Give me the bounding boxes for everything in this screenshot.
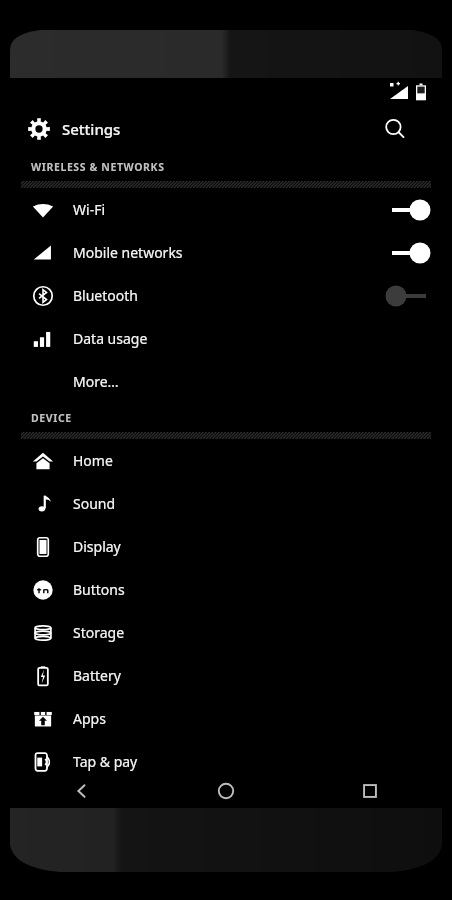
staticText: Mobile networks [73, 243, 183, 262]
button[interactable]: Apps [10, 697, 442, 740]
staticText: Data usage [73, 329, 148, 348]
button[interactable]: Sound [10, 482, 442, 525]
button[interactable]: More… [10, 360, 442, 403]
button[interactable]: Mobile networks [10, 231, 442, 274]
staticText: Display [73, 537, 121, 556]
button[interactable]: Data usage [10, 317, 442, 360]
button[interactable]: Display [10, 525, 442, 568]
staticText: More… [73, 372, 119, 391]
button[interactable]: Home [10, 439, 442, 482]
button[interactable]: Search [378, 112, 412, 146]
button[interactable]: Buttons [10, 568, 442, 611]
button[interactable]: Storage [10, 611, 442, 654]
button[interactable]: Tap & pay [10, 740, 442, 783]
button[interactable]: Wi-Fi [10, 188, 442, 231]
button[interactable]: Bluetooth [10, 274, 442, 317]
staticText: Bluetooth [73, 286, 138, 305]
staticText: Apps [73, 709, 106, 728]
staticText: Settings [62, 119, 121, 139]
button[interactable]: Back [10, 772, 154, 810]
staticText: Tap & pay [73, 752, 138, 771]
staticText: Battery [73, 666, 121, 685]
button[interactable]: Battery [10, 654, 442, 697]
staticText: Buttons [73, 580, 125, 599]
button[interactable]: Recent apps [298, 772, 442, 810]
staticText: Sound [73, 494, 116, 513]
staticText: Home [73, 451, 113, 470]
staticText: DEVICE [31, 411, 72, 425]
staticText: Storage [73, 623, 125, 642]
button[interactable]: Home [154, 772, 298, 810]
staticText: WIRELESS & NETWORKS [31, 160, 165, 174]
staticText: Wi-Fi [73, 200, 106, 219]
